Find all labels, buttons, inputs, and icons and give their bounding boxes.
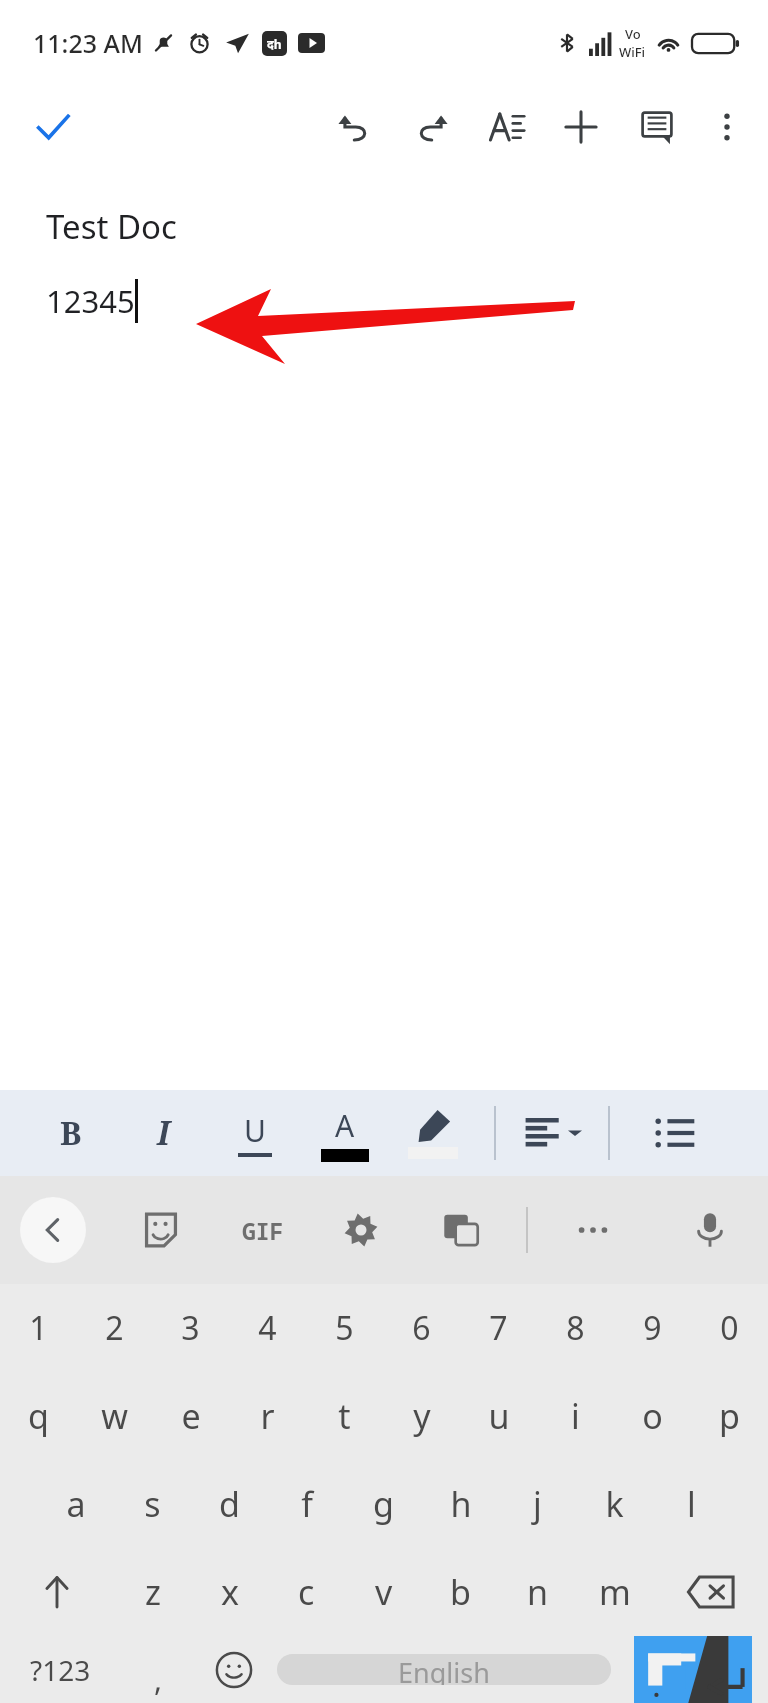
button[interactable]: Comments [626, 96, 688, 158]
staticText: Test Doc [46, 204, 177, 249]
button[interactable]: Voice input [680, 1199, 740, 1261]
button[interactable]: y [383, 1372, 460, 1460]
button[interactable]: 7 [460, 1284, 537, 1372]
button[interactable]: 2 [76, 1284, 152, 1372]
staticText: j [533, 1481, 542, 1527]
staticText: i [571, 1393, 580, 1439]
staticText: v [375, 1569, 393, 1615]
button[interactable]: GIF [232, 1199, 294, 1261]
staticText: 4 [258, 1306, 277, 1350]
staticText: q [28, 1393, 49, 1439]
button[interactable]: More [562, 1199, 624, 1261]
button[interactable]: 5 [306, 1284, 383, 1372]
button[interactable]: a [38, 1460, 114, 1548]
button[interactable]: , [121, 1636, 196, 1703]
staticText: 8 [566, 1306, 585, 1350]
button[interactable]: 1 [0, 1284, 76, 1372]
staticText: Vo [625, 25, 641, 43]
button[interactable]: r [229, 1372, 306, 1460]
staticText: h [450, 1481, 472, 1527]
button[interactable]: Stickers [130, 1199, 192, 1261]
button[interactable]: s [114, 1460, 191, 1548]
button[interactable]: Undo [324, 96, 386, 158]
staticText: p [719, 1393, 740, 1439]
button[interactable]: Alignment [522, 1095, 584, 1171]
button[interactable]: l [653, 1460, 730, 1548]
button[interactable]: k [576, 1460, 653, 1548]
button[interactable]: Emoji [196, 1636, 271, 1703]
staticText: I [157, 1111, 170, 1155]
button[interactable]: 4 [229, 1284, 306, 1372]
staticText: 0 [720, 1306, 739, 1350]
button[interactable]: Bulleted list [644, 1095, 706, 1171]
button[interactable]: 9 [614, 1284, 691, 1372]
staticText: 1 [29, 1306, 48, 1350]
button[interactable]: 0 [691, 1284, 768, 1372]
button[interactable]: Redo [400, 96, 462, 158]
button[interactable]: Highlight color [402, 1095, 464, 1171]
button[interactable]: Bold [40, 1095, 102, 1171]
staticText: 2 [105, 1306, 124, 1350]
button[interactable]: f [268, 1460, 345, 1548]
staticText: e [181, 1393, 201, 1439]
button[interactable]: Shift [0, 1548, 114, 1636]
staticText: दh [267, 36, 282, 52]
button[interactable]: o [614, 1372, 691, 1460]
staticText: c [298, 1569, 315, 1615]
button[interactable]: g [345, 1460, 422, 1548]
staticText: l [687, 1481, 696, 1527]
staticText: g [373, 1481, 394, 1527]
staticText: ?123 [30, 1651, 91, 1689]
staticText: t [338, 1393, 351, 1439]
button[interactable]: t [306, 1372, 383, 1460]
button[interactable]: Underline [224, 1095, 286, 1171]
button[interactable]: English [277, 1654, 611, 1685]
staticText: GIF [242, 1215, 284, 1246]
button[interactable]: c [268, 1548, 345, 1636]
button[interactable]: Done [22, 96, 84, 158]
button[interactable]: p [691, 1372, 768, 1460]
button[interactable]: i [537, 1372, 614, 1460]
button[interactable]: Insert [550, 96, 612, 158]
button[interactable]: 3 [152, 1284, 229, 1372]
staticText: o [642, 1393, 663, 1439]
button[interactable]: h [422, 1460, 499, 1548]
button[interactable]: Enter [617, 1636, 768, 1703]
button[interactable]: Backspace [653, 1548, 768, 1636]
button[interactable]: Italic [132, 1095, 194, 1171]
button[interactable]: Settings [330, 1199, 392, 1261]
button[interactable]: v [345, 1548, 422, 1636]
button[interactable]: 8 [537, 1284, 614, 1372]
staticText: n [527, 1569, 549, 1615]
button[interactable]: Translate [430, 1199, 492, 1261]
staticText: , [154, 1659, 163, 1700]
staticText: f [301, 1481, 313, 1527]
staticText: English [398, 1654, 490, 1685]
button[interactable]: e [152, 1372, 229, 1460]
staticText: w [101, 1393, 128, 1439]
button[interactable]: Back [20, 1197, 86, 1263]
button[interactable]: x [191, 1548, 268, 1636]
button[interactable]: d [191, 1460, 268, 1548]
button[interactable]: m [576, 1548, 653, 1636]
staticText: WiFi [619, 43, 646, 61]
staticText: 12345 [46, 280, 135, 322]
button[interactable]: b [422, 1548, 499, 1636]
button[interactable]: q [0, 1372, 76, 1460]
button[interactable]: w [76, 1372, 152, 1460]
button[interactable]: z [114, 1548, 191, 1636]
staticText: u [488, 1393, 510, 1439]
staticText: 9 [643, 1306, 662, 1350]
staticText: a [66, 1481, 86, 1527]
button[interactable]: j [499, 1460, 576, 1548]
button[interactable]: Text color [314, 1095, 376, 1171]
button[interactable]: u [460, 1372, 537, 1460]
staticText: 3 [181, 1306, 200, 1350]
staticText: 11:23 AM [33, 26, 143, 60]
button[interactable]: More options [696, 96, 758, 158]
button[interactable]: 6 [383, 1284, 460, 1372]
button[interactable]: ?123 [0, 1636, 121, 1703]
staticText: b [450, 1569, 471, 1615]
button[interactable]: Text formatting [476, 96, 538, 158]
button[interactable]: n [499, 1548, 576, 1636]
